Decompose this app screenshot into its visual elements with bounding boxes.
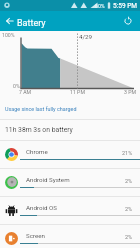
staticText: 2% bbox=[125, 206, 133, 212]
staticText: 11h 38m 3s on battery bbox=[5, 126, 73, 134]
staticText: 21% bbox=[122, 150, 133, 156]
button[interactable]: Android OS bbox=[0, 196, 140, 224]
staticText: Screen bbox=[26, 232, 45, 239]
staticText: 100% bbox=[2, 32, 15, 38]
staticText: Chrome bbox=[26, 148, 48, 155]
button[interactable]: Chrome bbox=[0, 140, 140, 168]
button[interactable]: Android System bbox=[0, 168, 140, 196]
button[interactable]: Refresh bbox=[120, 13, 136, 29]
staticText: Android OS bbox=[26, 204, 57, 211]
staticText: 11 PM bbox=[70, 89, 85, 95]
staticText: 0% bbox=[13, 83, 20, 89]
staticText: 60% bbox=[95, 3, 105, 9]
staticText: 4/29 bbox=[79, 33, 92, 40]
staticText: 3 PM bbox=[124, 89, 137, 95]
button[interactable]: Back bbox=[2, 13, 18, 29]
staticText: 7 AM bbox=[19, 89, 32, 95]
button[interactable]: Screen bbox=[0, 224, 140, 248]
staticText: Battery bbox=[17, 18, 46, 29]
staticText: 2% bbox=[125, 178, 133, 184]
staticText: Android System bbox=[26, 176, 70, 183]
button[interactable]: Usage since last fully charged bbox=[5, 106, 77, 112]
staticText: 2% bbox=[125, 234, 133, 240]
staticText: 5:59 PM bbox=[113, 2, 137, 10]
